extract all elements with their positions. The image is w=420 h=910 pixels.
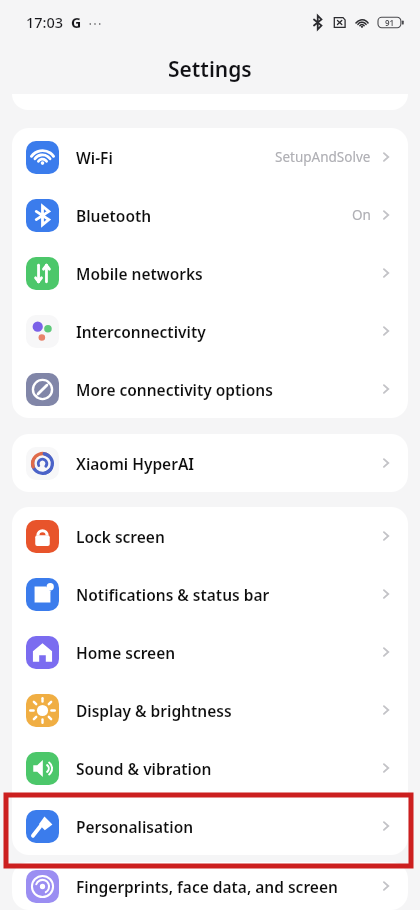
staticText: Personalisation [76,816,378,837]
staticText: Bluetooth [76,205,352,226]
button[interactable]: Fingerprints, face data, and screen [12,862,408,910]
staticText: On [352,206,371,224]
staticText: 91 [385,17,395,28]
button[interactable]: Interconnectivity [12,302,408,360]
button[interactable]: More connectivity options [12,360,408,418]
staticText: Mobile networks [76,263,378,284]
staticText: 17:03 [26,12,64,32]
button[interactable]: Lock screen [12,507,408,565]
staticText: SetupAndSolve [275,148,371,166]
button[interactable]: Mobile networks [12,244,408,302]
staticText: Home screen [76,642,378,663]
button[interactable]: Wi-Fi [12,128,408,186]
staticText: More connectivity options [76,379,378,400]
button[interactable]: Display & brightness [12,681,408,739]
button[interactable]: Sound & vibration [12,739,408,797]
staticText: Fingerprints, face data, and screen [76,876,378,897]
button[interactable]: Home screen [12,623,408,681]
button[interactable]: Xiaomi HyperAI [12,434,408,492]
button[interactable]: Bluetooth [12,186,408,244]
staticText: Notifications & status bar [76,584,378,605]
staticText: Display & brightness [76,700,378,721]
staticText: Sound & vibration [76,758,378,779]
staticText: Lock screen [76,526,378,547]
staticText: Xiaomi HyperAI [76,453,378,474]
staticText: Settings [168,55,252,84]
staticText: Interconnectivity [76,321,378,342]
button[interactable]: Personalisation [12,797,408,855]
button[interactable]: Notifications & status bar [12,565,408,623]
staticText: Wi-Fi [76,147,275,168]
staticText: G [71,13,82,32]
